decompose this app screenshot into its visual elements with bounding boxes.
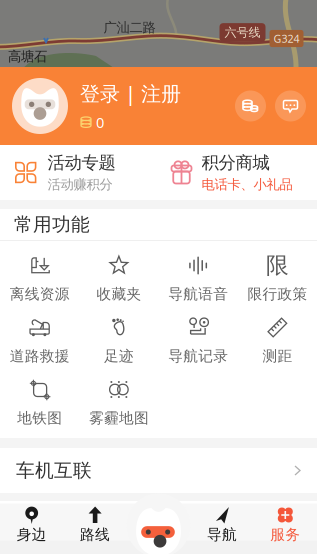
button[interactable]: Assistant [126, 493, 190, 554]
staticText: 0 [96, 112, 104, 132]
staticText: 导航语音 [168, 285, 228, 303]
staticText: 服务 [270, 525, 300, 543]
staticText: 离线资源 [10, 285, 70, 303]
staticText: 车机互联 [16, 459, 92, 482]
button[interactable]: 收藏夹 [79, 241, 158, 303]
button[interactable]: 测距 [238, 303, 317, 365]
button[interactable]: Avatar [12, 78, 68, 134]
button[interactable]: 雾霾地图 [79, 365, 158, 427]
button[interactable]: 地铁图 [0, 365, 79, 427]
staticText: 高塘石 [8, 48, 47, 65]
staticText: 地铁图 [17, 409, 62, 427]
button[interactable]: 登录 | 注册 [68, 80, 181, 132]
staticText: 常用功能 [14, 213, 90, 236]
staticText: 积分商城 [201, 152, 269, 173]
staticText: 身边 [17, 525, 47, 543]
button[interactable]: 积分商城 [158, 152, 317, 193]
button[interactable]: 导航 [190, 503, 254, 540]
button[interactable]: 道路救援 [0, 303, 79, 365]
staticText: 雾霾地图 [89, 409, 149, 427]
staticText: 道路救援 [10, 347, 70, 365]
staticText: 足迹 [104, 347, 134, 365]
staticText: G324 [273, 31, 299, 46]
button[interactable]: 服务 [254, 503, 317, 540]
staticText: 六号线 [224, 25, 260, 40]
staticText: 路线 [80, 525, 110, 543]
button[interactable]: 路线 [63, 503, 127, 540]
staticText: 限行政策 [247, 285, 307, 303]
button[interactable]: 足迹 [79, 303, 158, 365]
staticText: 测距 [262, 347, 292, 365]
button[interactable]: Messages [275, 90, 306, 121]
button[interactable]: 导航记录 [158, 303, 238, 365]
staticText: 电话卡、小礼品 [201, 176, 292, 193]
staticText: 活动赚积分 [47, 176, 112, 193]
staticText: 登录 | 注册 [80, 80, 181, 107]
button[interactable]: 活动专题 [0, 152, 158, 193]
staticText: 导航记录 [168, 347, 228, 365]
staticText: 收藏夹 [96, 285, 141, 303]
button[interactable]: 限 [238, 241, 317, 303]
staticText: 广汕二路 [103, 19, 155, 36]
button[interactable]: 导航语音 [158, 241, 238, 303]
button[interactable]: 离线资源 [0, 241, 79, 303]
button[interactable]: 身边 [0, 503, 63, 540]
staticText: 活动专题 [47, 152, 115, 173]
button[interactable]: Wallet [235, 90, 266, 121]
staticText: 导航 [207, 525, 237, 543]
staticText: 限 [266, 252, 289, 279]
button[interactable]: 车机互联 [0, 448, 317, 493]
